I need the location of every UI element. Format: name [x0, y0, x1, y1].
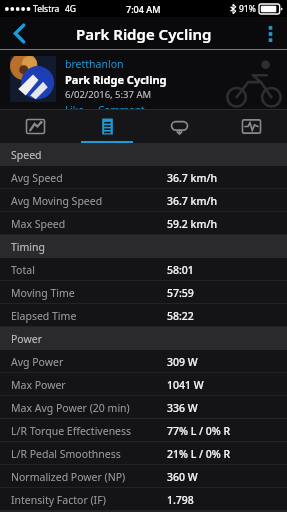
- staticText: 6/02/2016, 5:37 AM: [65, 88, 152, 101]
- staticText: Avg Speed: [11, 171, 63, 185]
- staticText: 21% L / 0% R: [167, 447, 231, 461]
- staticText: Telstra: [33, 3, 60, 15]
- staticText: Avg Power: [11, 355, 64, 369]
- staticText: Comment: [98, 103, 145, 110]
- button[interactable]: Avg Moving Speed: [0, 189, 287, 212]
- staticText: 309 W: [167, 355, 198, 369]
- staticText: Like: [65, 103, 84, 110]
- staticText: 58:01: [167, 263, 194, 277]
- staticText: Park Ridge Cycling: [65, 72, 167, 87]
- button[interactable]: Max Avg Power (20 min): [0, 396, 287, 419]
- staticText: bretthanlon: [65, 57, 124, 71]
- staticText: 1041 W: [167, 378, 204, 392]
- staticText: 336 W: [167, 401, 198, 415]
- staticText: Max Avg Power (20 min): [11, 401, 130, 415]
- button[interactable]: Intensity Factor (IF): [0, 488, 287, 511]
- staticText: 1.798: [167, 493, 194, 507]
- staticText: Power: [11, 332, 43, 346]
- staticText: L/R Torque Effectiveness: [11, 424, 132, 438]
- staticText: 360 W: [167, 470, 198, 484]
- staticText: 36.7 km/h: [167, 194, 218, 208]
- button[interactable]: More options: [253, 17, 287, 50]
- staticText: 4G: [65, 3, 77, 15]
- staticText: Park Ridge Cycling: [76, 24, 212, 44]
- button[interactable]: L/R Torque Effectiveness: [0, 419, 287, 442]
- staticText: Total: [11, 263, 35, 277]
- staticText: 57:59: [167, 286, 194, 300]
- staticText: Speed: [11, 148, 42, 162]
- staticText: Timing: [11, 240, 46, 254]
- staticText: Avg Moving Speed: [11, 194, 103, 208]
- staticText: 91%: [239, 3, 256, 15]
- button[interactable]: Max Speed: [0, 212, 287, 235]
- button[interactable]: Avg Power: [0, 350, 287, 373]
- button[interactable]: Elapsed Time: [0, 304, 287, 327]
- button[interactable]: Total: [0, 258, 287, 281]
- staticText: Max Speed: [11, 217, 66, 231]
- button[interactable]: Charts: [215, 110, 287, 143]
- staticText: Intensity Factor (IF): [11, 493, 106, 507]
- button[interactable]: Back: [0, 17, 38, 50]
- staticText: 59.2 km/h: [167, 217, 218, 231]
- staticText: 36.7 km/h: [167, 171, 218, 185]
- button[interactable]: [10, 56, 56, 102]
- button[interactable]: Laps: [143, 110, 215, 143]
- staticText: Normalized Power (NP): [11, 470, 126, 484]
- button[interactable]: L/R Pedal Smoothness: [0, 442, 287, 465]
- button[interactable]: Normalized Power (NP): [0, 465, 287, 488]
- staticText: L/R Pedal Smoothness: [11, 447, 121, 461]
- staticText: 58:22: [167, 309, 194, 323]
- staticText: Max Power: [11, 378, 66, 392]
- button[interactable]: Like: [65, 103, 84, 110]
- button[interactable]: Comment: [98, 103, 145, 110]
- staticText: 77% L / 0% R: [167, 424, 231, 438]
- staticText: Elapsed Time: [11, 309, 77, 323]
- staticText: Moving Time: [11, 286, 75, 300]
- button[interactable]: Map: [0, 110, 71, 143]
- staticText: 7:04 AM: [126, 3, 161, 15]
- button[interactable]: Max Power: [0, 373, 287, 396]
- button[interactable]: Avg Speed: [0, 166, 287, 189]
- button[interactable]: Details: [71, 110, 143, 143]
- button[interactable]: Moving Time: [0, 281, 287, 304]
